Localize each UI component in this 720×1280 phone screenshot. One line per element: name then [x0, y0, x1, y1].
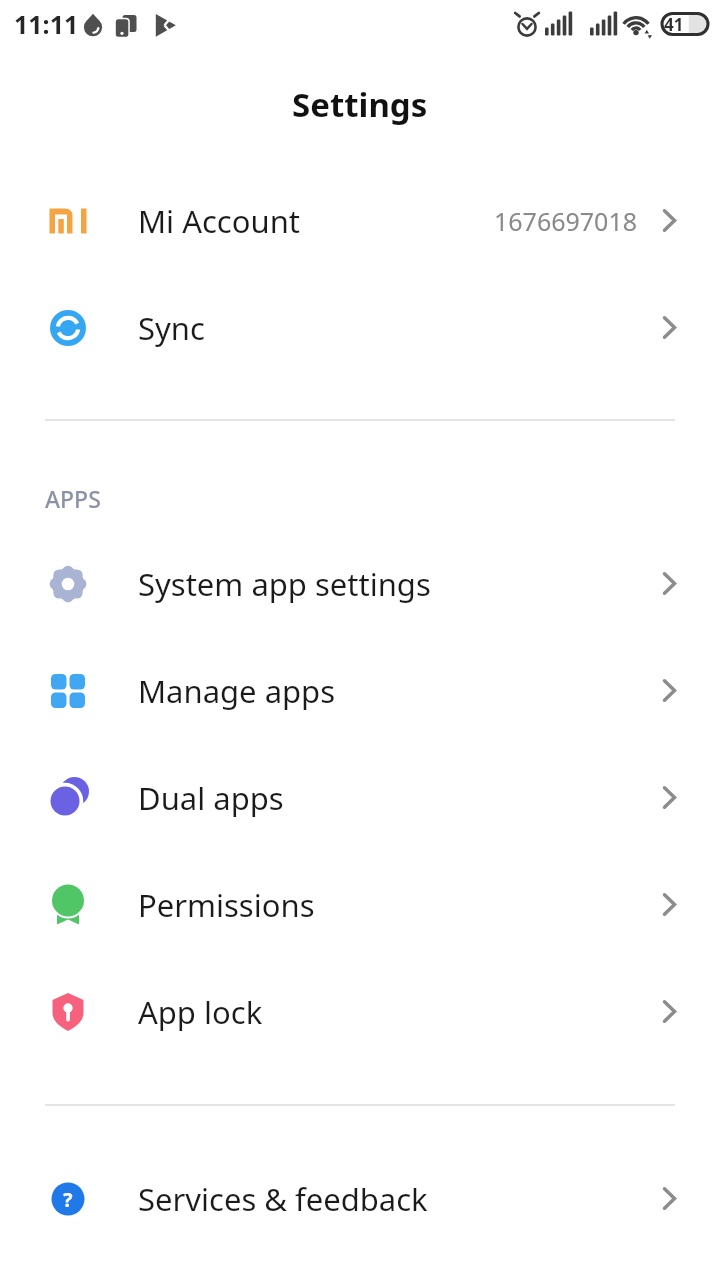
staticText: 41: [664, 13, 684, 36]
staticText: Settings: [292, 82, 428, 127]
staticText: App lock: [138, 991, 263, 1033]
button[interactable]: Dual apps: [0, 744, 720, 851]
staticText: System app settings: [138, 563, 431, 605]
staticText: Dual apps: [138, 777, 284, 819]
button[interactable]: System app settings: [0, 530, 720, 637]
button[interactable]: Permissions: [0, 851, 720, 958]
staticText: APPS: [45, 483, 101, 514]
button[interactable]: App lock: [0, 958, 720, 1065]
button[interactable]: Mi Account: [0, 167, 720, 274]
staticText: Services & feedback: [138, 1178, 428, 1220]
staticText: Sync: [138, 307, 205, 349]
staticText: Manage apps: [138, 670, 336, 712]
staticText: 11:11: [14, 7, 79, 41]
staticText: Permissions: [138, 884, 315, 926]
button[interactable]: Sync: [0, 274, 720, 381]
button[interactable]: ?: [0, 1145, 720, 1252]
staticText: Mi Account: [138, 200, 301, 242]
staticText: 1676697018: [494, 204, 638, 238]
staticText: ?: [63, 1186, 73, 1213]
button[interactable]: Manage apps: [0, 637, 720, 744]
